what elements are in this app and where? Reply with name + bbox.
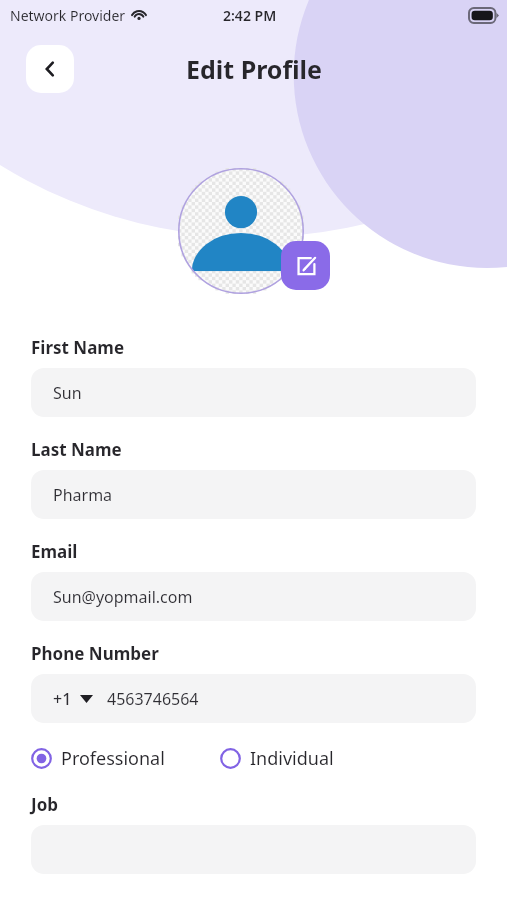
staticText: Edit Profile bbox=[186, 52, 322, 86]
button[interactable]: Back bbox=[26, 45, 74, 93]
staticText: Pharma bbox=[53, 484, 113, 506]
button[interactable]: Edit photo bbox=[281, 241, 330, 290]
button[interactable]: Sun bbox=[31, 368, 476, 417]
staticText: Individual bbox=[250, 746, 334, 771]
staticText: Email bbox=[31, 540, 78, 563]
staticText: 4563746564 bbox=[107, 688, 199, 710]
staticText: First Name bbox=[31, 336, 125, 359]
staticText: Last Name bbox=[31, 438, 122, 461]
staticText: +1 bbox=[53, 688, 72, 710]
button[interactable]: +1 bbox=[31, 674, 476, 723]
button[interactable]: Pharma bbox=[31, 470, 476, 519]
button[interactable]: Professional bbox=[31, 746, 165, 771]
staticText: Phone Number bbox=[31, 642, 159, 665]
button[interactable]: Sun@yopmail.com bbox=[31, 572, 476, 621]
staticText: Sun bbox=[53, 382, 82, 404]
staticText: Network Provider bbox=[10, 6, 126, 25]
staticText: 2:42 PM bbox=[223, 6, 277, 25]
staticText: Job bbox=[31, 793, 58, 816]
staticText: Sun@yopmail.com bbox=[53, 586, 193, 608]
button[interactable]: Individual bbox=[220, 746, 334, 771]
staticText: Professional bbox=[61, 746, 165, 771]
